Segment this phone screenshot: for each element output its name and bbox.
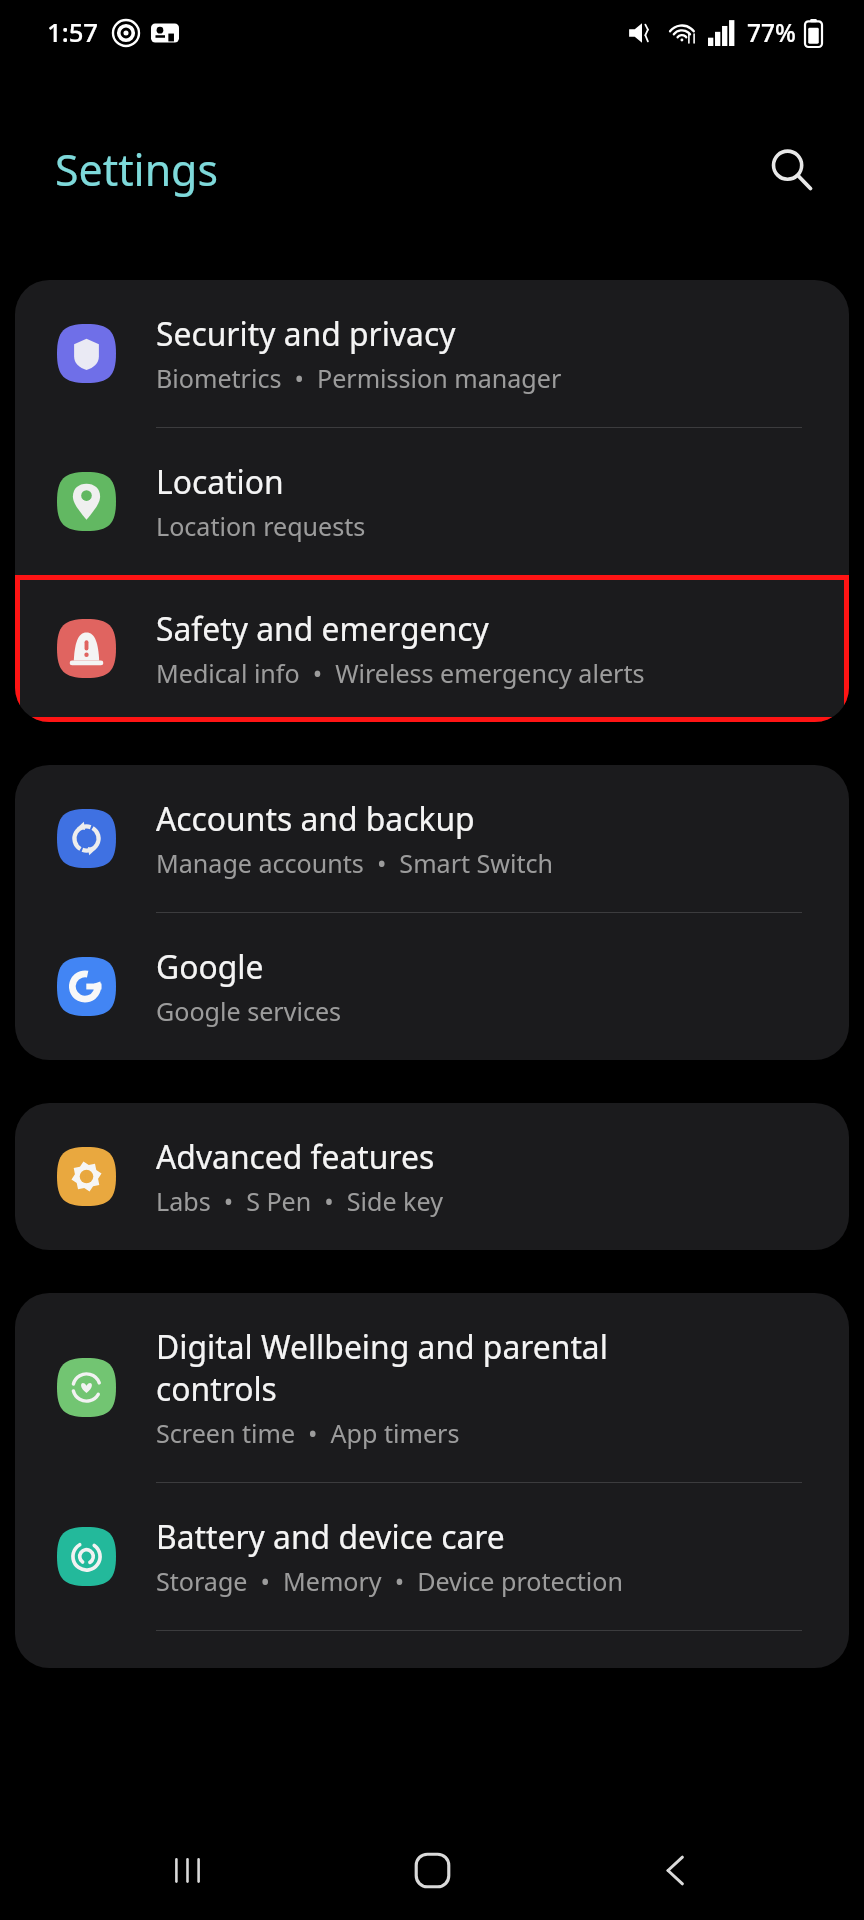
- staticText: Manage accounts • Smart Switch: [156, 846, 554, 880]
- button[interactable]: Safety and emergency: [15, 575, 849, 722]
- staticText: Accounts and backup: [156, 797, 475, 840]
- staticText: Location requests: [156, 509, 366, 543]
- button[interactable]: Recent apps: [131, 1820, 244, 1920]
- staticText: Safety and emergency: [156, 607, 489, 650]
- button[interactable]: Home: [376, 1820, 489, 1920]
- staticText: 77%: [747, 16, 796, 49]
- button[interactable]: Security and privacy: [15, 280, 849, 427]
- button[interactable]: Digital Wellbeing and parental controls: [15, 1293, 849, 1482]
- staticText: Settings: [55, 140, 218, 198]
- staticText: Battery and device care: [156, 1515, 505, 1558]
- staticText: Google: [156, 945, 264, 988]
- staticText: Biometrics • Permission manager: [156, 361, 562, 395]
- button[interactable]: Google: [15, 913, 849, 1060]
- staticText: Storage • Memory • Device protection: [156, 1564, 623, 1598]
- staticText: Advanced features: [156, 1135, 435, 1178]
- staticText: Medical info • Wireless emergency alerts: [156, 656, 645, 690]
- button[interactable]: Location: [15, 428, 849, 575]
- staticText: Google services: [156, 994, 342, 1028]
- button[interactable]: Accounts and backup: [15, 765, 849, 912]
- button[interactable]: Back: [620, 1820, 733, 1920]
- staticText: Screen time • App timers: [156, 1416, 460, 1450]
- staticText: Location: [156, 460, 284, 503]
- staticText: Security and privacy: [156, 312, 456, 355]
- button[interactable]: Battery and device care: [15, 1483, 849, 1630]
- staticText: 1:57: [47, 15, 99, 50]
- button[interactable]: Search: [756, 134, 827, 205]
- staticText: Labs • S Pen • Side key: [156, 1184, 443, 1218]
- staticText: Digital Wellbeing and parental controls: [156, 1325, 608, 1410]
- button[interactable]: Advanced features: [15, 1103, 849, 1250]
